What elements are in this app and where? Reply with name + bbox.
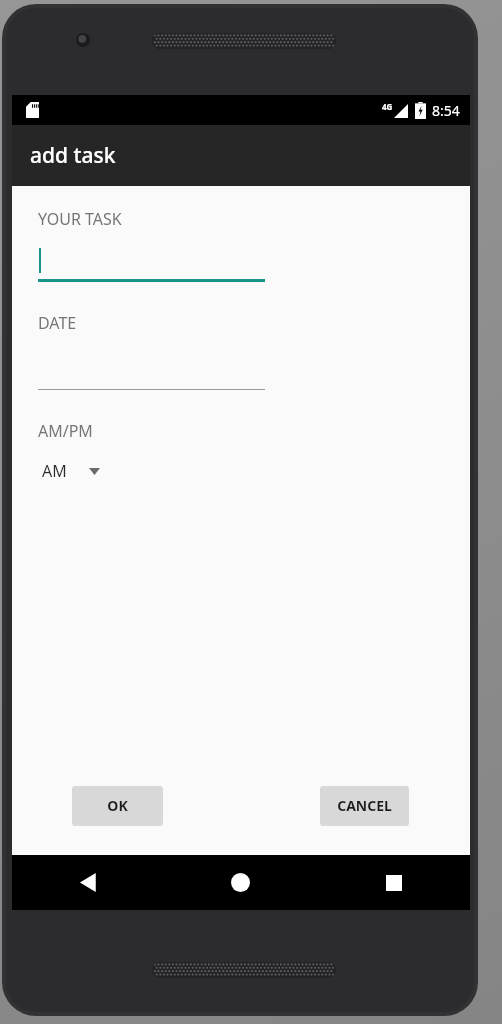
button[interactable]: Recent apps — [317, 855, 470, 910]
staticText: add task — [30, 141, 116, 170]
button[interactable]: AM — [42, 454, 100, 488]
staticText: 8:54 — [432, 101, 460, 120]
staticText: 4G — [382, 101, 393, 112]
staticText: CANCEL — [337, 796, 392, 815]
staticText: AM — [42, 460, 67, 482]
staticText: YOUR TASK — [38, 208, 122, 230]
button[interactable]: CANCEL — [320, 786, 409, 824]
staticText: DATE — [38, 312, 77, 334]
staticText: AM/PM — [38, 420, 93, 442]
other: Select AM or PM — [89, 468, 100, 475]
staticText: OK — [107, 796, 128, 815]
button[interactable] — [38, 246, 265, 282]
button[interactable]: OK — [72, 786, 163, 824]
button[interactable]: Back — [12, 855, 164, 910]
button[interactable]: Home — [164, 855, 317, 910]
button[interactable] — [38, 352, 265, 390]
